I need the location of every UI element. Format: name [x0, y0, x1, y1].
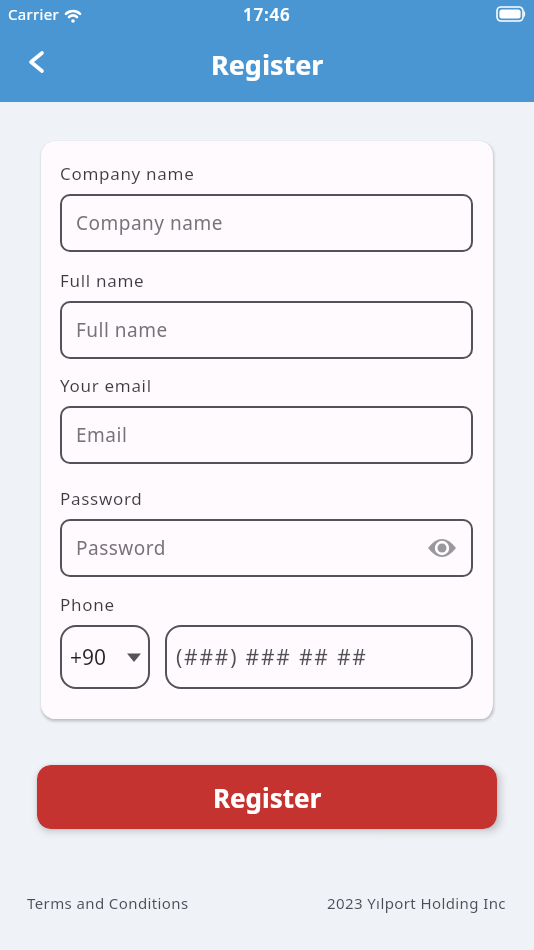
staticText: 17:46: [243, 3, 291, 26]
staticText: Carrier: [8, 4, 59, 24]
staticText: Company name: [60, 162, 195, 185]
button[interactable]: (###) ### ## ##: [165, 625, 473, 689]
staticText: Password: [76, 535, 166, 561]
staticText: Your email: [60, 374, 152, 397]
staticText: 2023 Yılport Holding Inc: [327, 893, 506, 913]
staticText: Password: [60, 487, 143, 510]
staticText: Register: [211, 46, 324, 83]
staticText: Full name: [60, 269, 145, 292]
button[interactable]: +90: [60, 625, 150, 689]
button[interactable]: Register: [37, 765, 497, 829]
button[interactable]: Terms and Conditions: [27, 893, 189, 913]
button[interactable]: [20, 46, 52, 78]
staticText: (###) ### ## ##: [176, 643, 368, 672]
staticText: Email: [76, 422, 128, 448]
staticText: Company name: [76, 210, 223, 236]
button[interactable]: Password: [60, 519, 473, 577]
button[interactable]: Full name: [60, 301, 473, 359]
staticText: Phone: [60, 593, 115, 616]
button[interactable]: Company name: [60, 194, 473, 252]
button[interactable]: Email: [60, 406, 473, 464]
staticText: Full name: [76, 317, 168, 343]
staticText: +90: [70, 643, 107, 672]
staticText: Register: [213, 780, 322, 815]
